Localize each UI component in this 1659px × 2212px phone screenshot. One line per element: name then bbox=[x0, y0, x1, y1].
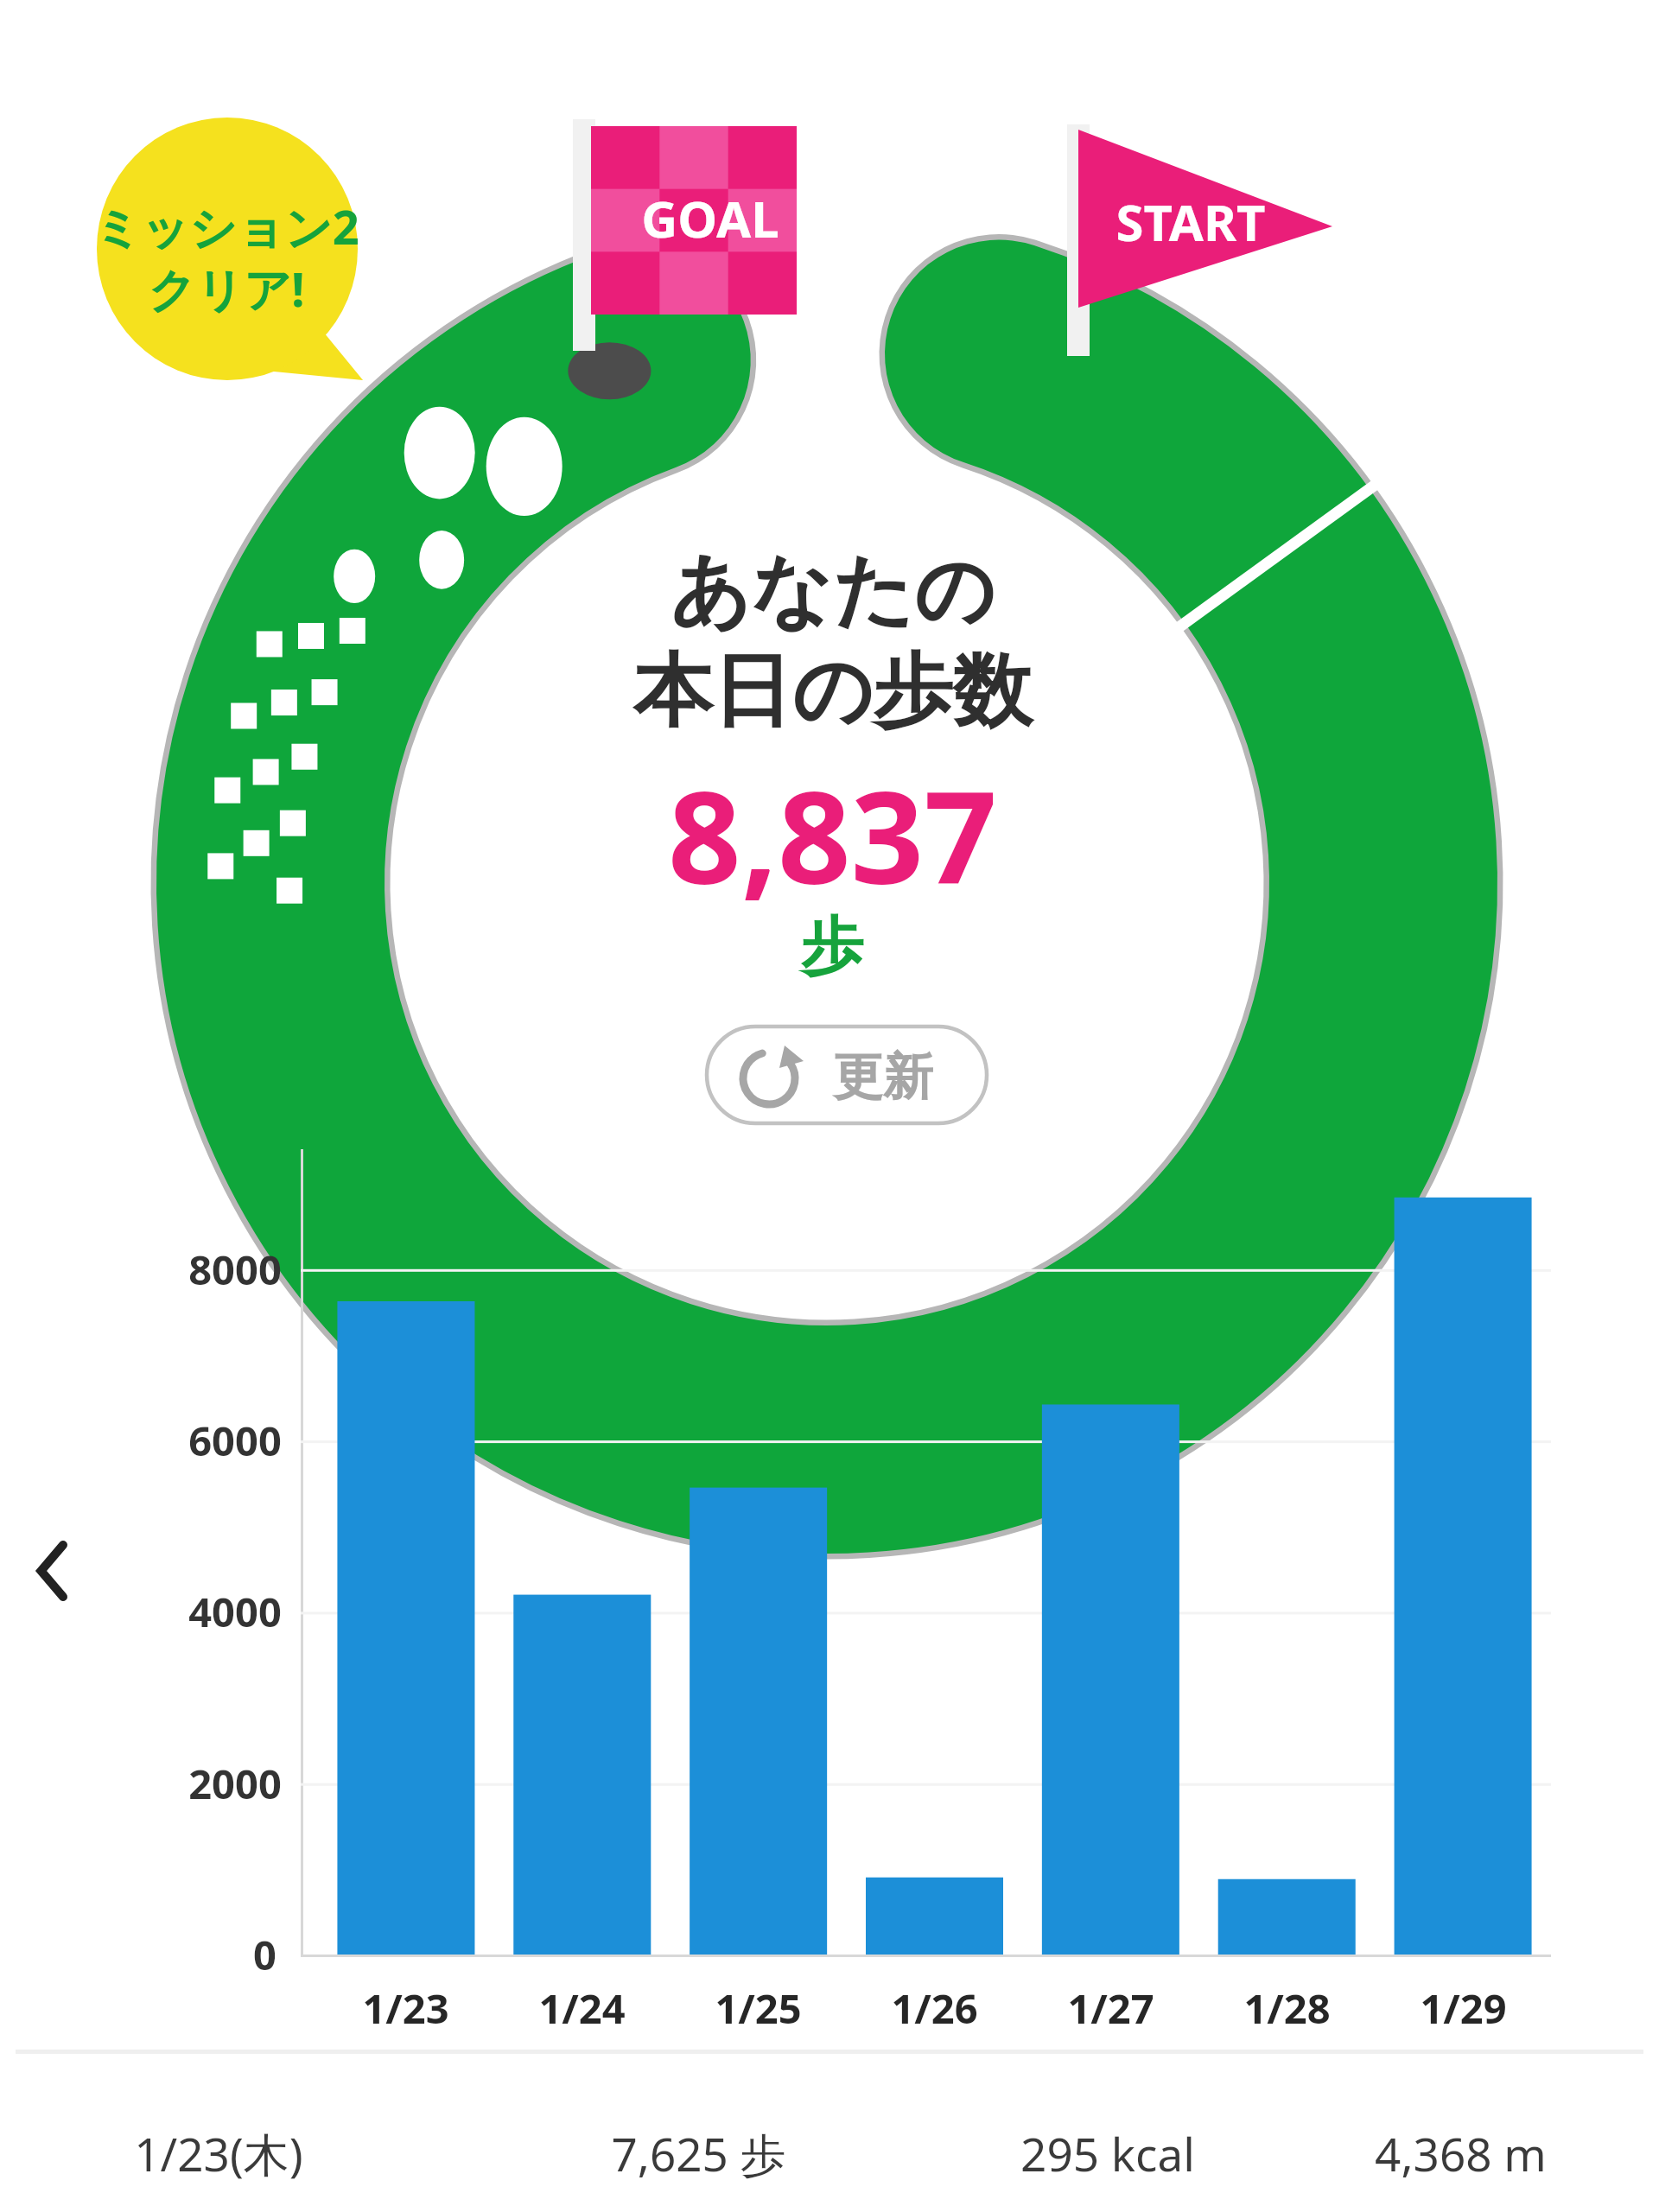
button[interactable]: Daily summary 1/23 bbox=[17, 2074, 1642, 2212]
staticText: 4,368 m bbox=[1375, 2122, 1547, 2184]
staticText: 1/23(木) bbox=[134, 2122, 303, 2184]
staticText: 4000 bbox=[188, 1584, 282, 1639]
staticText: 8000 bbox=[188, 1242, 282, 1297]
staticText: クリア! bbox=[148, 257, 305, 321]
staticText: 1/26 bbox=[891, 1980, 978, 2036]
staticText: 1/23 bbox=[362, 1980, 449, 2036]
staticText: あなたの bbox=[670, 541, 995, 641]
staticText: 295 kcal bbox=[1020, 2122, 1195, 2184]
staticText: 1/24 bbox=[538, 1980, 626, 2036]
staticText: 0 bbox=[253, 1927, 276, 1982]
staticText: 6000 bbox=[188, 1413, 282, 1468]
staticText: 更新 bbox=[833, 1046, 933, 1109]
staticText: 歩 bbox=[801, 908, 863, 987]
staticText: 7,625 歩 bbox=[611, 2122, 786, 2184]
staticText: 2000 bbox=[188, 1756, 282, 1811]
button[interactable]: Mission 2 cleared bbox=[97, 118, 358, 380]
staticText: ミッション2 bbox=[93, 194, 359, 258]
staticText: 1/27 bbox=[1067, 1980, 1154, 2036]
staticText: 8,837 bbox=[668, 747, 997, 922]
button[interactable]: Previous week bbox=[9, 1521, 104, 1624]
staticText: 本日の歩数 bbox=[632, 641, 1033, 741]
staticText: GOAL bbox=[641, 184, 779, 252]
staticText: START bbox=[1116, 188, 1266, 256]
staticText: 1/29 bbox=[1420, 1980, 1507, 2036]
button[interactable]: Refresh step count bbox=[707, 1027, 987, 1123]
staticText: 1/25 bbox=[715, 1980, 802, 2036]
staticText: 1/28 bbox=[1243, 1980, 1331, 2036]
